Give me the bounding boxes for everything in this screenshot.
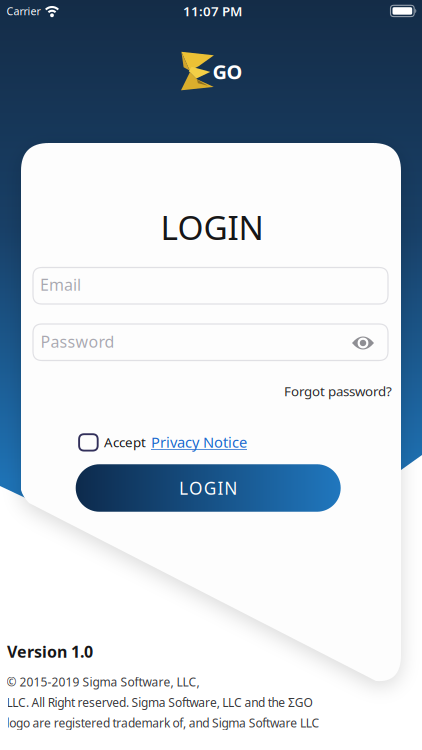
staticText: LLC. All Right reserved. Sigma Software,… (6, 694, 312, 710)
staticText: 11:07 PM (183, 2, 242, 20)
button[interactable]: LOGIN (76, 464, 341, 512)
staticText: Forgot password? (284, 382, 392, 400)
staticText: Version 1.0 (7, 641, 93, 662)
staticText: LOGIN (160, 205, 263, 249)
staticText: logo are registered trademark of, and Si… (6, 715, 319, 731)
staticText: Privacy Notice (151, 432, 247, 452)
staticText: Password (40, 331, 114, 352)
staticText: GO (212, 58, 242, 85)
button[interactable]: Show password (351, 332, 374, 353)
staticText: LOGIN (179, 476, 237, 499)
staticText: Email (40, 274, 81, 295)
button[interactable]: Forgot password? (284, 382, 392, 400)
button[interactable]: Privacy Notice (151, 432, 247, 452)
staticText: © 2015-2019 Sigma Software, LLC, (6, 674, 199, 690)
staticText: Carrier (6, 4, 40, 18)
staticText: Accept (104, 433, 146, 451)
button[interactable]: Accept (78, 433, 99, 452)
